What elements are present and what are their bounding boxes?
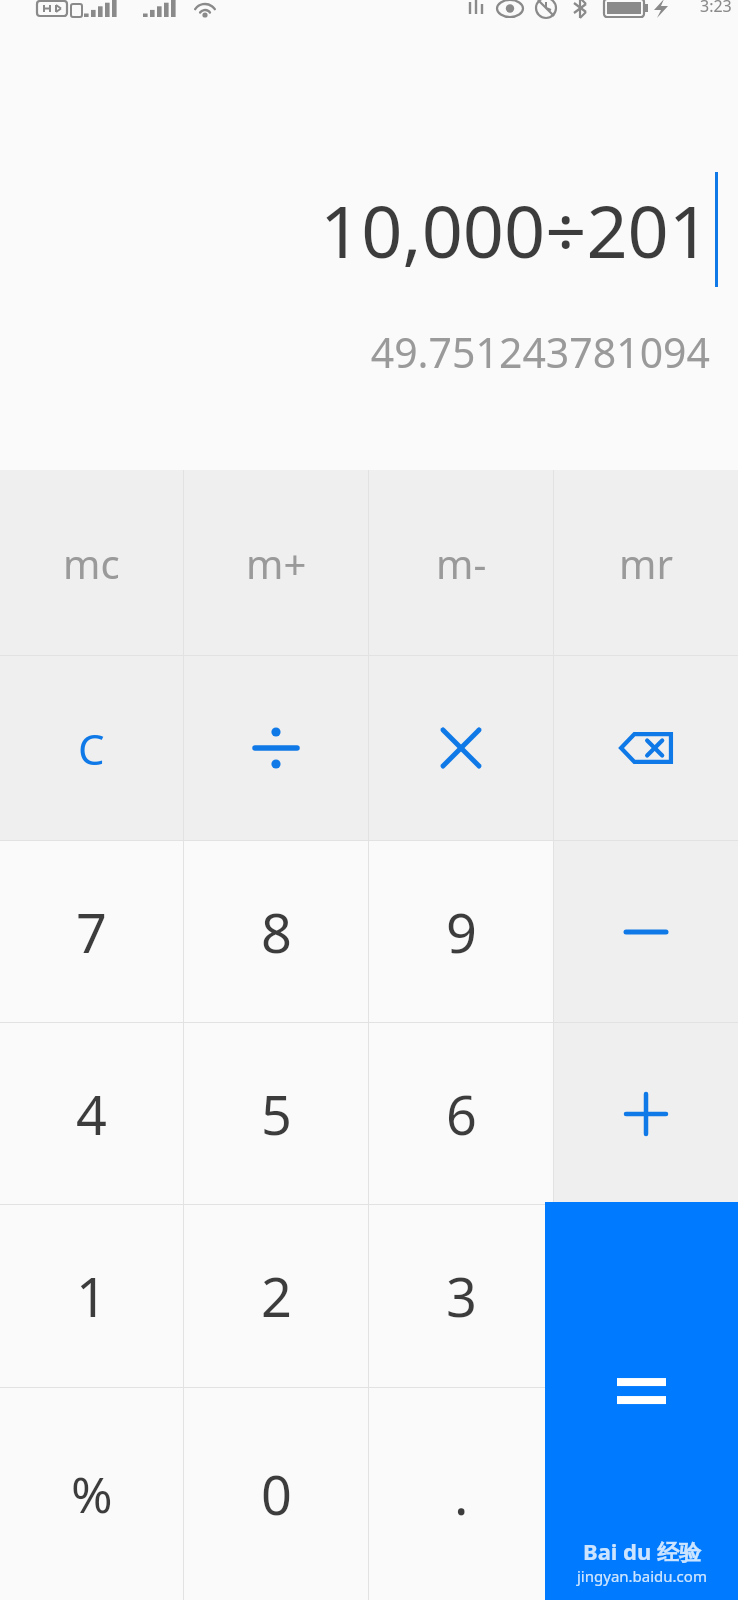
button[interactable]: % (0, 1388, 183, 1600)
staticText: m- (436, 536, 487, 590)
button[interactable]: Minus (554, 841, 738, 1022)
button[interactable]: m+ (184, 470, 368, 655)
staticText: 5 (261, 1077, 292, 1151)
staticText: mc (63, 536, 120, 590)
button[interactable]: 8 (184, 841, 368, 1022)
button[interactable]: C (0, 656, 183, 840)
staticText: 3:23 (700, 0, 732, 17)
button[interactable]: 6 (369, 1023, 553, 1204)
staticText: C (78, 720, 105, 777)
staticText: 10,000÷201 (320, 181, 710, 279)
staticText: 0 (261, 1457, 292, 1531)
staticText: mr (619, 536, 673, 590)
staticText: Bai du 经验 (583, 1536, 702, 1566)
button[interactable]: 0 (184, 1388, 368, 1600)
button[interactable]: mr (554, 470, 738, 655)
button[interactable]: Backspace (554, 656, 738, 840)
button[interactable]: Multiply (369, 656, 553, 840)
button[interactable]: 1 (0, 1205, 183, 1387)
button[interactable]: Plus (554, 1023, 738, 1204)
button[interactable]: 7 (0, 841, 183, 1022)
staticText: . (454, 1457, 469, 1531)
staticText: 49.751243781094 (370, 324, 710, 380)
button[interactable]: 9 (369, 841, 553, 1022)
button[interactable]: . (369, 1388, 553, 1600)
staticText: 7 (76, 895, 107, 969)
staticText: jingyan.baidu.com (577, 1566, 707, 1586)
staticText: 3 (446, 1259, 477, 1333)
staticText: m+ (246, 536, 307, 590)
staticText: % (71, 1460, 113, 1528)
button[interactable]: 2 (184, 1205, 368, 1387)
button[interactable]: mc (0, 470, 183, 655)
staticText: 8 (261, 895, 292, 969)
button[interactable]: Divide (184, 656, 368, 840)
button[interactable]: 5 (184, 1023, 368, 1204)
staticText: 6 (446, 1077, 477, 1151)
staticText: 9 (446, 895, 477, 969)
staticText: 4 (76, 1077, 107, 1151)
button[interactable]: m- (369, 470, 553, 655)
button[interactable]: 4 (0, 1023, 183, 1204)
staticText: 2 (261, 1259, 292, 1333)
button[interactable]: Equals (545, 1202, 738, 1600)
button[interactable]: 3 (369, 1205, 553, 1387)
staticText: 1 (76, 1259, 107, 1333)
